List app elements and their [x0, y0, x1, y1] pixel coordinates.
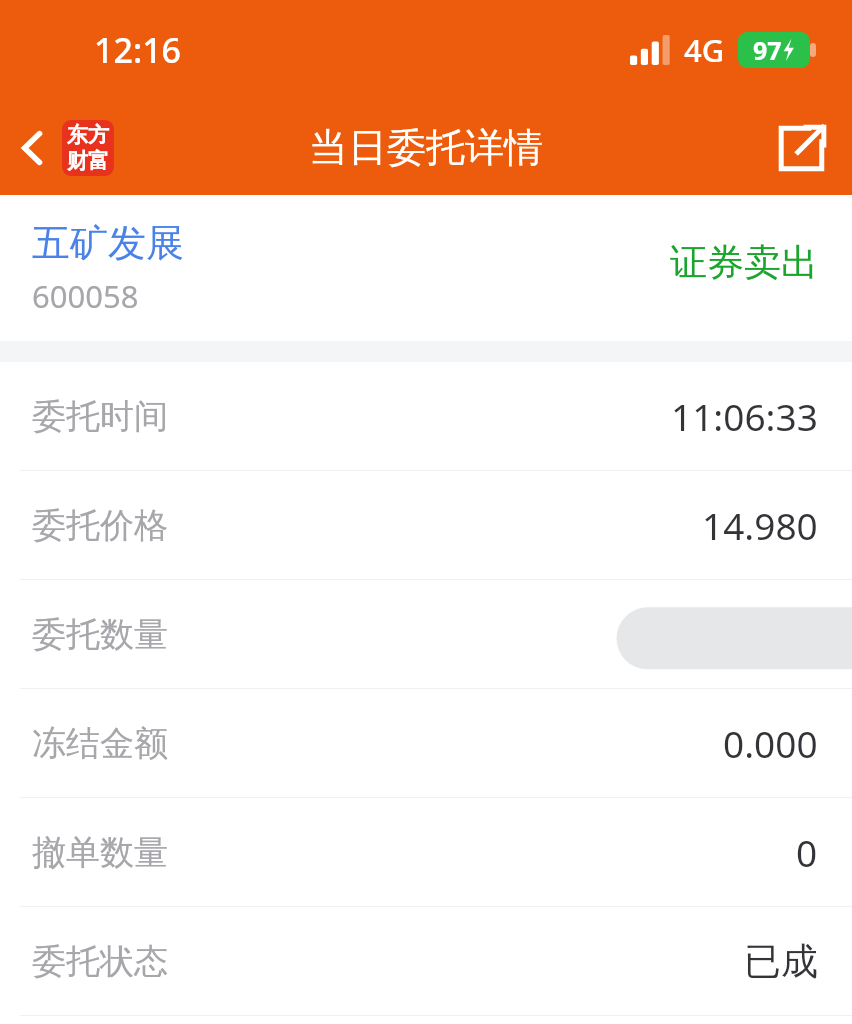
button[interactable]: 委托数量	[0, 580, 852, 688]
staticText: 东方	[67, 122, 109, 148]
staticText: 4G	[684, 29, 725, 71]
staticText: 委托数量	[32, 613, 168, 656]
staticText: 0	[796, 827, 818, 877]
staticText: 11:06:33	[671, 391, 818, 441]
staticText: 12:16	[94, 27, 182, 73]
staticText: 撤单数量	[32, 831, 168, 874]
button[interactable]: 委托时间	[0, 362, 852, 470]
staticText: 14.980	[702, 500, 818, 550]
staticText: 已成	[744, 938, 818, 985]
staticText: 97	[753, 33, 782, 67]
staticText: 当日委托详情	[309, 123, 543, 172]
staticText: 冻结金额	[32, 722, 168, 765]
staticText: 五矿发展	[32, 219, 184, 267]
staticText: 0.000	[723, 718, 818, 768]
button[interactable]: 委托状态	[0, 907, 852, 1015]
staticText: 委托时间	[32, 395, 168, 438]
button[interactable]: Share	[764, 112, 852, 184]
staticText: 财富	[67, 148, 109, 174]
staticText: 600058	[32, 275, 139, 317]
button[interactable]: Back	[0, 112, 124, 184]
staticText: 委托价格	[32, 504, 168, 547]
button[interactable]: 冻结金额	[0, 689, 852, 797]
button[interactable]: 委托价格	[0, 471, 852, 579]
staticText: 委托状态	[32, 940, 168, 983]
button[interactable]: 五矿发展	[0, 195, 852, 341]
button[interactable]: 撤单数量	[0, 798, 852, 906]
staticText: 证券卖出	[670, 239, 818, 286]
